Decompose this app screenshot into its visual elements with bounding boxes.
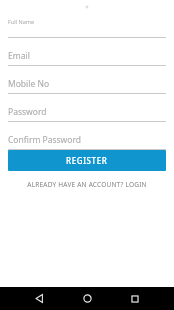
staticText: Confirm Password (8, 134, 81, 146)
staticText: Password (8, 106, 47, 118)
button[interactable]: REGISTER (8, 150, 166, 171)
staticText: ALREADY HAVE AN ACCOUNT? LOGIN (27, 180, 147, 189)
button[interactable]: Confirm Password (8, 130, 166, 150)
staticText: Mobile No (8, 78, 50, 90)
staticText: Full Name (8, 18, 35, 25)
button[interactable]: Home (74, 287, 100, 310)
staticText: Email (8, 50, 30, 62)
button[interactable]: Password (8, 102, 166, 122)
button[interactable]: Back (26, 287, 52, 310)
button[interactable]: Email (8, 46, 166, 66)
staticText: REGISTER (66, 155, 108, 166)
button[interactable]: Full Name (8, 14, 166, 38)
button[interactable]: ALREADY HAVE AN ACCOUNT? LOGIN (8, 177, 166, 191)
button[interactable]: Recent apps (122, 287, 148, 310)
button[interactable]: Mobile No (8, 74, 166, 94)
